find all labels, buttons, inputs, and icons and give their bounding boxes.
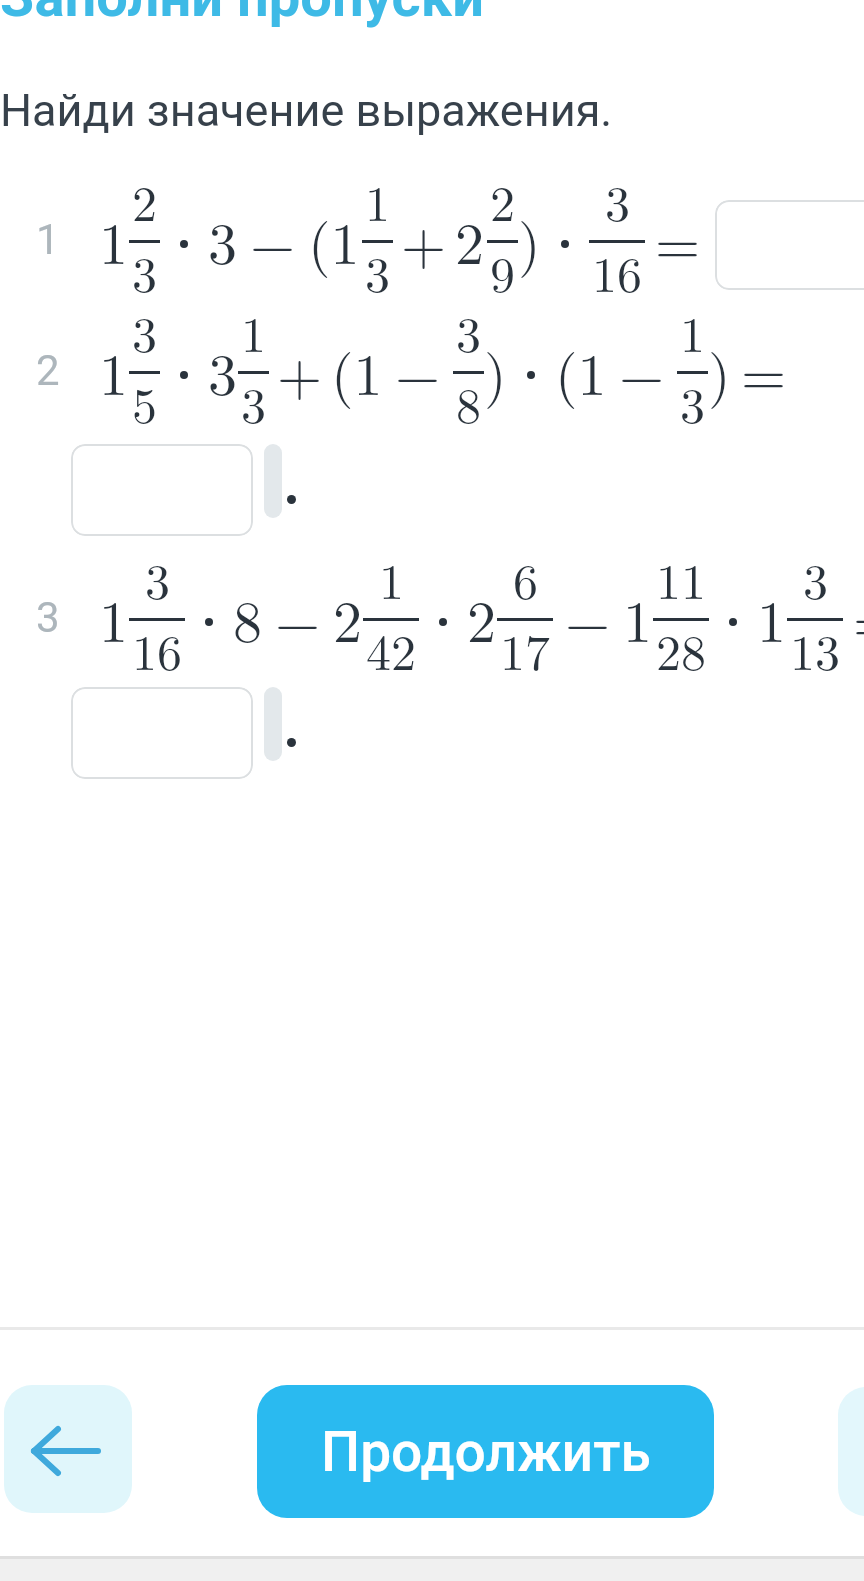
staticText: 3 [365,236,390,307]
button[interactable] [4,1385,132,1513]
staticText: 1 [99,330,129,412]
staticText: (1 [555,330,607,412]
staticText: 3 [456,296,481,367]
staticText: 1 [99,199,129,281]
staticText: = [655,199,701,281]
staticText: 1 [680,296,705,367]
staticText: 2 [132,165,157,236]
staticText: − [275,577,321,659]
staticText: 1 [379,543,404,614]
staticText: 8 [456,367,481,438]
staticText: Заполни пропуски [0,0,485,30]
staticText: 9 [490,236,515,307]
staticText: 1 [365,165,390,236]
staticText: (1 [308,199,360,281]
staticText: 6 [513,543,538,614]
staticText: 2 [455,199,485,281]
staticText: 16 [592,236,642,307]
staticText: − [619,330,665,412]
staticText: 5 [132,367,157,438]
staticText: − [250,199,296,281]
staticText: 1 [241,296,266,367]
staticText: ) [484,330,507,412]
staticText: 16 [132,614,182,685]
staticText: + [277,330,323,412]
staticText: − [565,577,611,659]
staticText: = [853,577,864,659]
staticText: 1 [757,577,787,659]
staticText: 1 [36,215,60,264]
button[interactable] [71,444,253,536]
staticText: Найди значение выражения. [0,84,613,137]
staticText: 3 [132,236,157,307]
staticText: 13 [790,614,840,685]
staticText: 3 [208,199,238,281]
staticText: 42 [366,614,416,685]
button[interactable] [71,687,253,779]
staticText: 2 [490,165,515,236]
button[interactable]: Продолжить [257,1385,714,1518]
staticText: ) [518,199,541,281]
staticText: 8 [233,577,263,659]
staticText: 11 [656,543,706,614]
staticText: ) [708,330,731,412]
staticText: 3 [241,367,266,438]
staticText: − [395,330,441,412]
staticText: Продолжить [321,1420,651,1484]
staticText: 3 [208,330,238,412]
staticText: = [741,330,787,412]
staticText: 3 [36,593,60,642]
staticText: 1 [623,577,653,659]
staticText: 28 [656,614,706,685]
staticText: 3 [132,296,157,367]
staticText: 2 [36,346,60,395]
staticText: 2 [333,577,363,659]
staticText: 2 [467,577,497,659]
staticText: 17 [500,614,550,685]
staticText: 1 [99,577,129,659]
staticText: 3 [605,165,630,236]
button[interactable] [715,200,864,290]
staticText: + [401,199,447,281]
staticText: 3 [680,367,705,438]
button[interactable] [838,1387,864,1516]
staticText: 3 [145,543,170,614]
staticText: 3 [803,543,828,614]
staticText: (1 [331,330,383,412]
